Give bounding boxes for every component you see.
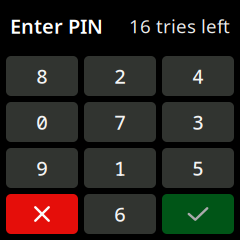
button[interactable]: 2 bbox=[84, 56, 156, 96]
staticText: 0 bbox=[36, 108, 48, 136]
button[interactable]: 5 bbox=[162, 148, 234, 188]
staticText: 5 bbox=[192, 154, 204, 182]
staticText: 7 bbox=[114, 108, 126, 136]
button[interactable]: 1 bbox=[84, 148, 156, 188]
staticText: 4 bbox=[192, 62, 204, 90]
button[interactable]: 7 bbox=[84, 102, 156, 142]
staticText: 9 bbox=[36, 154, 48, 182]
staticText: 8 bbox=[36, 62, 48, 90]
staticText: 1 bbox=[114, 154, 126, 182]
staticText: 3 bbox=[192, 108, 204, 136]
button[interactable]: 8 bbox=[6, 56, 78, 96]
button[interactable]: 0 bbox=[6, 102, 78, 142]
button[interactable]: 9 bbox=[6, 148, 78, 188]
staticText: 16 tries left bbox=[129, 14, 230, 38]
button[interactable]: 4 bbox=[162, 56, 234, 96]
staticText: 2 bbox=[114, 62, 126, 90]
button[interactable]: 6 bbox=[84, 194, 156, 234]
staticText: Enter PIN bbox=[10, 13, 103, 39]
button[interactable]: 3 bbox=[162, 102, 234, 142]
button[interactable]: Confirm bbox=[162, 194, 234, 234]
button[interactable]: Delete bbox=[6, 194, 78, 234]
staticText: 6 bbox=[114, 200, 126, 228]
